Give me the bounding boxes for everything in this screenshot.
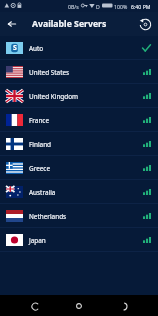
- staticText: Auto: [29, 44, 44, 53]
- button[interactable]: S: [0, 36, 158, 60]
- button[interactable]: Finland: [0, 132, 158, 156]
- button[interactable]: Japan: [0, 228, 158, 252]
- button[interactable]: Greece: [0, 156, 158, 180]
- button[interactable]: United Kingdom: [0, 84, 158, 108]
- staticText: United States: [29, 68, 70, 77]
- button[interactable]: United States: [0, 60, 158, 84]
- button[interactable]: Refresh: [133, 12, 157, 36]
- staticText: 6:40 PM: [131, 3, 151, 10]
- staticText: Japan: [29, 236, 46, 245]
- staticText: 0B/s: [68, 3, 79, 10]
- button[interactable]: Home: [70, 297, 88, 315]
- button[interactable]: Recents: [114, 297, 132, 315]
- staticText: United Kingdom: [29, 92, 79, 101]
- staticText: Greece: [29, 164, 51, 173]
- button[interactable]: France: [0, 108, 158, 132]
- staticText: Netherlands: [29, 212, 67, 221]
- staticText: Australia: [29, 188, 56, 197]
- staticText: 100%: [114, 3, 128, 10]
- staticText: S: [13, 43, 17, 53]
- staticText: Finland: [29, 140, 52, 149]
- staticText: Available Servers: [32, 18, 107, 30]
- staticText: D: [96, 3, 100, 10]
- staticText: France: [29, 116, 50, 125]
- button[interactable]: Back: [26, 297, 44, 315]
- button[interactable]: Back: [0, 12, 24, 36]
- button[interactable]: Australia: [0, 180, 158, 204]
- button[interactable]: Netherlands: [0, 204, 158, 228]
